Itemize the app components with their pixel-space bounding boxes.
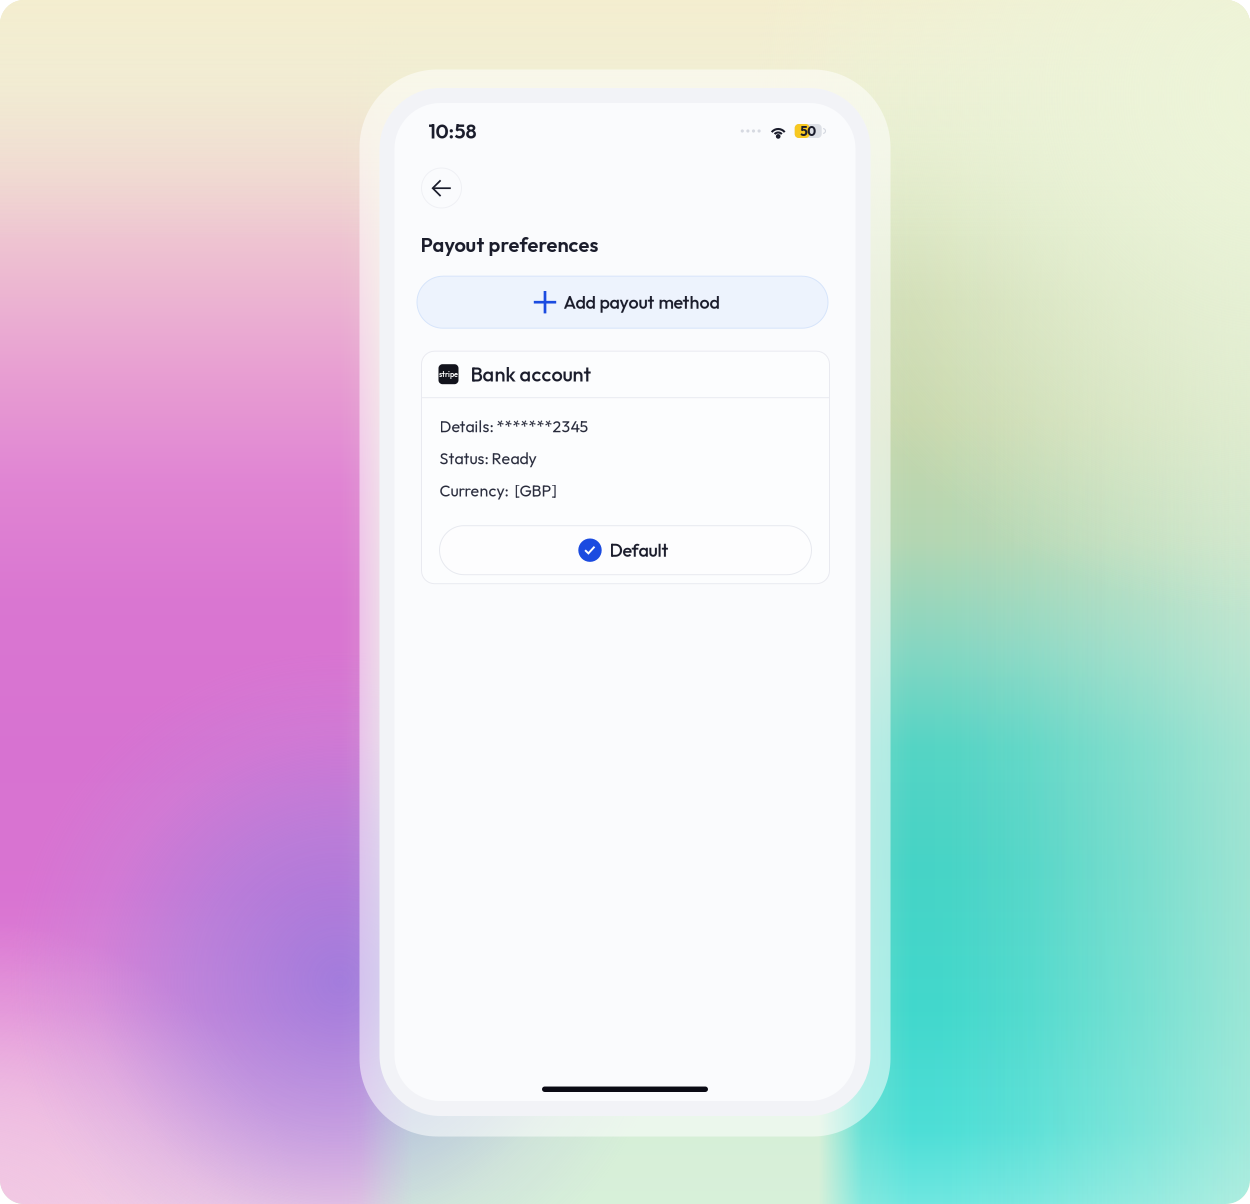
staticText: Add payout method [563,291,719,314]
staticText: Payout preferences [420,232,598,257]
button[interactable]: Add payout method [417,276,828,328]
staticText: Details: *******2345 [439,416,588,436]
staticText: stripe [439,370,458,379]
staticText: Bank account [470,362,591,387]
staticText: 10:58 [428,118,476,144]
staticText: Currency: [GBP] [439,480,556,501]
button[interactable]: Default [439,526,811,575]
staticText: 50 [800,123,816,139]
staticText: Default [609,539,668,561]
button[interactable]: Back [421,168,461,208]
staticText: Status: Ready [439,448,536,469]
